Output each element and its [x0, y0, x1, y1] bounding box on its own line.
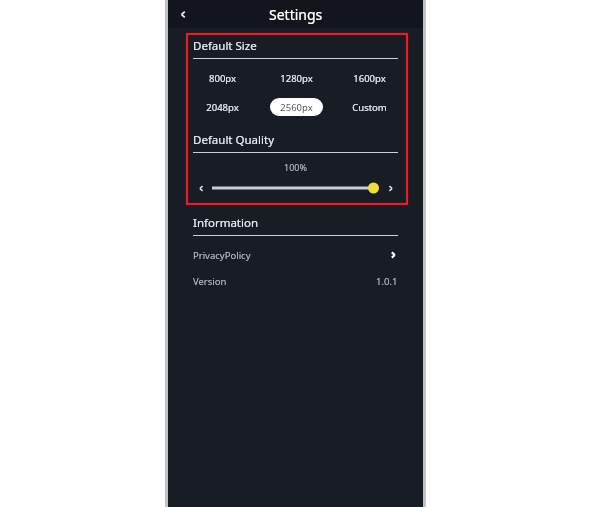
- staticText: Default Quality: [193, 132, 274, 148]
- staticText: 2560px: [280, 101, 313, 114]
- button[interactable]: PrivacyPolicy: [193, 246, 398, 264]
- button[interactable]: Custom: [342, 98, 397, 116]
- staticText: Default Size: [193, 38, 257, 54]
- button[interactable]: Decrease quality: [193, 180, 209, 196]
- button[interactable]: 2048px: [196, 98, 249, 116]
- staticText: Version: [193, 275, 376, 288]
- button[interactable]: 1280px: [270, 69, 323, 87]
- staticText: Information: [193, 215, 259, 231]
- button[interactable]: 800px: [199, 69, 246, 87]
- button[interactable]: Back: [172, 3, 194, 25]
- staticText: PrivacyPolicy: [193, 249, 388, 262]
- staticText: Settings: [269, 5, 323, 24]
- staticText: 800px: [209, 72, 236, 85]
- button[interactable]: 2560px: [270, 98, 323, 116]
- staticText: 1600px: [353, 72, 386, 85]
- staticText: 100%: [193, 161, 398, 173]
- button[interactable]: [212, 179, 379, 197]
- staticText: 1280px: [280, 72, 313, 85]
- staticText: 2048px: [206, 101, 239, 114]
- staticText: 1.0.1: [376, 275, 398, 288]
- button[interactable]: Increase quality: [382, 180, 398, 196]
- staticText: Custom: [352, 101, 387, 114]
- button[interactable]: 1600px: [343, 69, 396, 87]
